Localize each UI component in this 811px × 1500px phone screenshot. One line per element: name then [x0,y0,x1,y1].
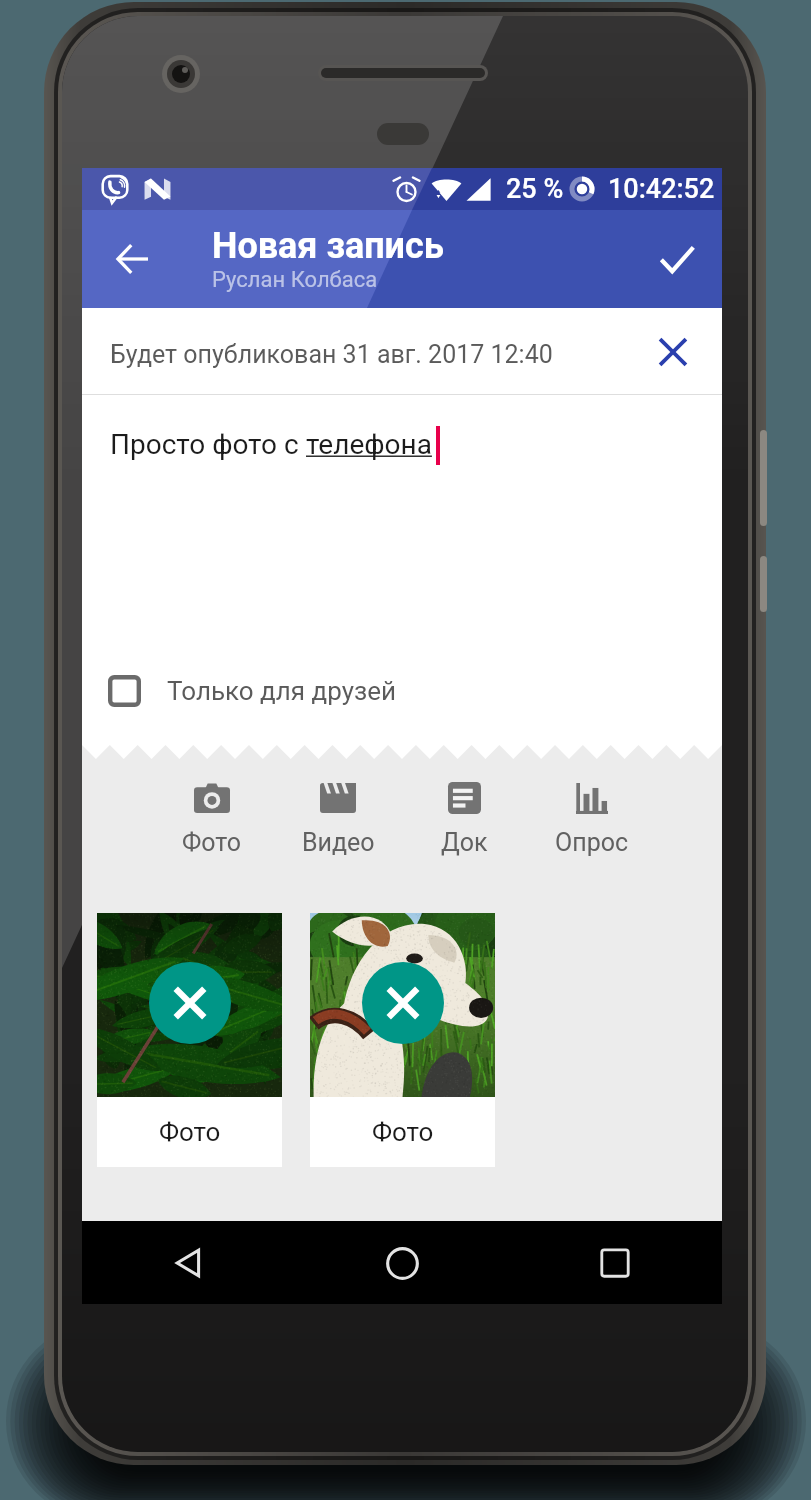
staticText: телефона [306,428,432,461]
staticText: Руслан Колбаса [212,267,378,293]
staticText: Опрос [555,828,629,857]
button[interactable]: Назад [151,1225,227,1301]
staticText: Просто фото с [110,428,306,461]
button[interactable]: Назад [82,210,212,308]
staticText: Только для друзей [167,676,396,706]
staticText: Будет опубликован 31 авг. 2017 12:40 [110,340,553,369]
button[interactable]: Только для друзей [82,652,722,730]
button[interactable]: Удалить вложение [97,913,282,1167]
staticText: Видео [302,828,375,857]
button[interactable]: Фото [149,782,275,857]
button[interactable]: Отменить отложенную публикацию [644,323,702,381]
button[interactable]: Удалить вложение [149,962,231,1044]
button[interactable]: Опубликовать [632,210,722,308]
button[interactable]: Удалить вложение [310,913,495,1167]
button[interactable]: Опрос [528,782,655,857]
staticText: Фото [372,1117,434,1147]
staticText: Фото [182,828,242,857]
staticText: Фото [159,1117,221,1147]
staticText: 25 % [506,173,564,205]
staticText: Док [441,828,488,857]
button[interactable]: Удалить вложение [362,962,444,1044]
staticText: Новая запись [212,225,444,267]
staticText: 10:42:52 [608,173,715,205]
button[interactable]: Видео [275,782,401,857]
button[interactable]: Домой [364,1225,440,1301]
button[interactable]: Недавние приложения [577,1225,653,1301]
button[interactable]: Док [401,782,528,857]
